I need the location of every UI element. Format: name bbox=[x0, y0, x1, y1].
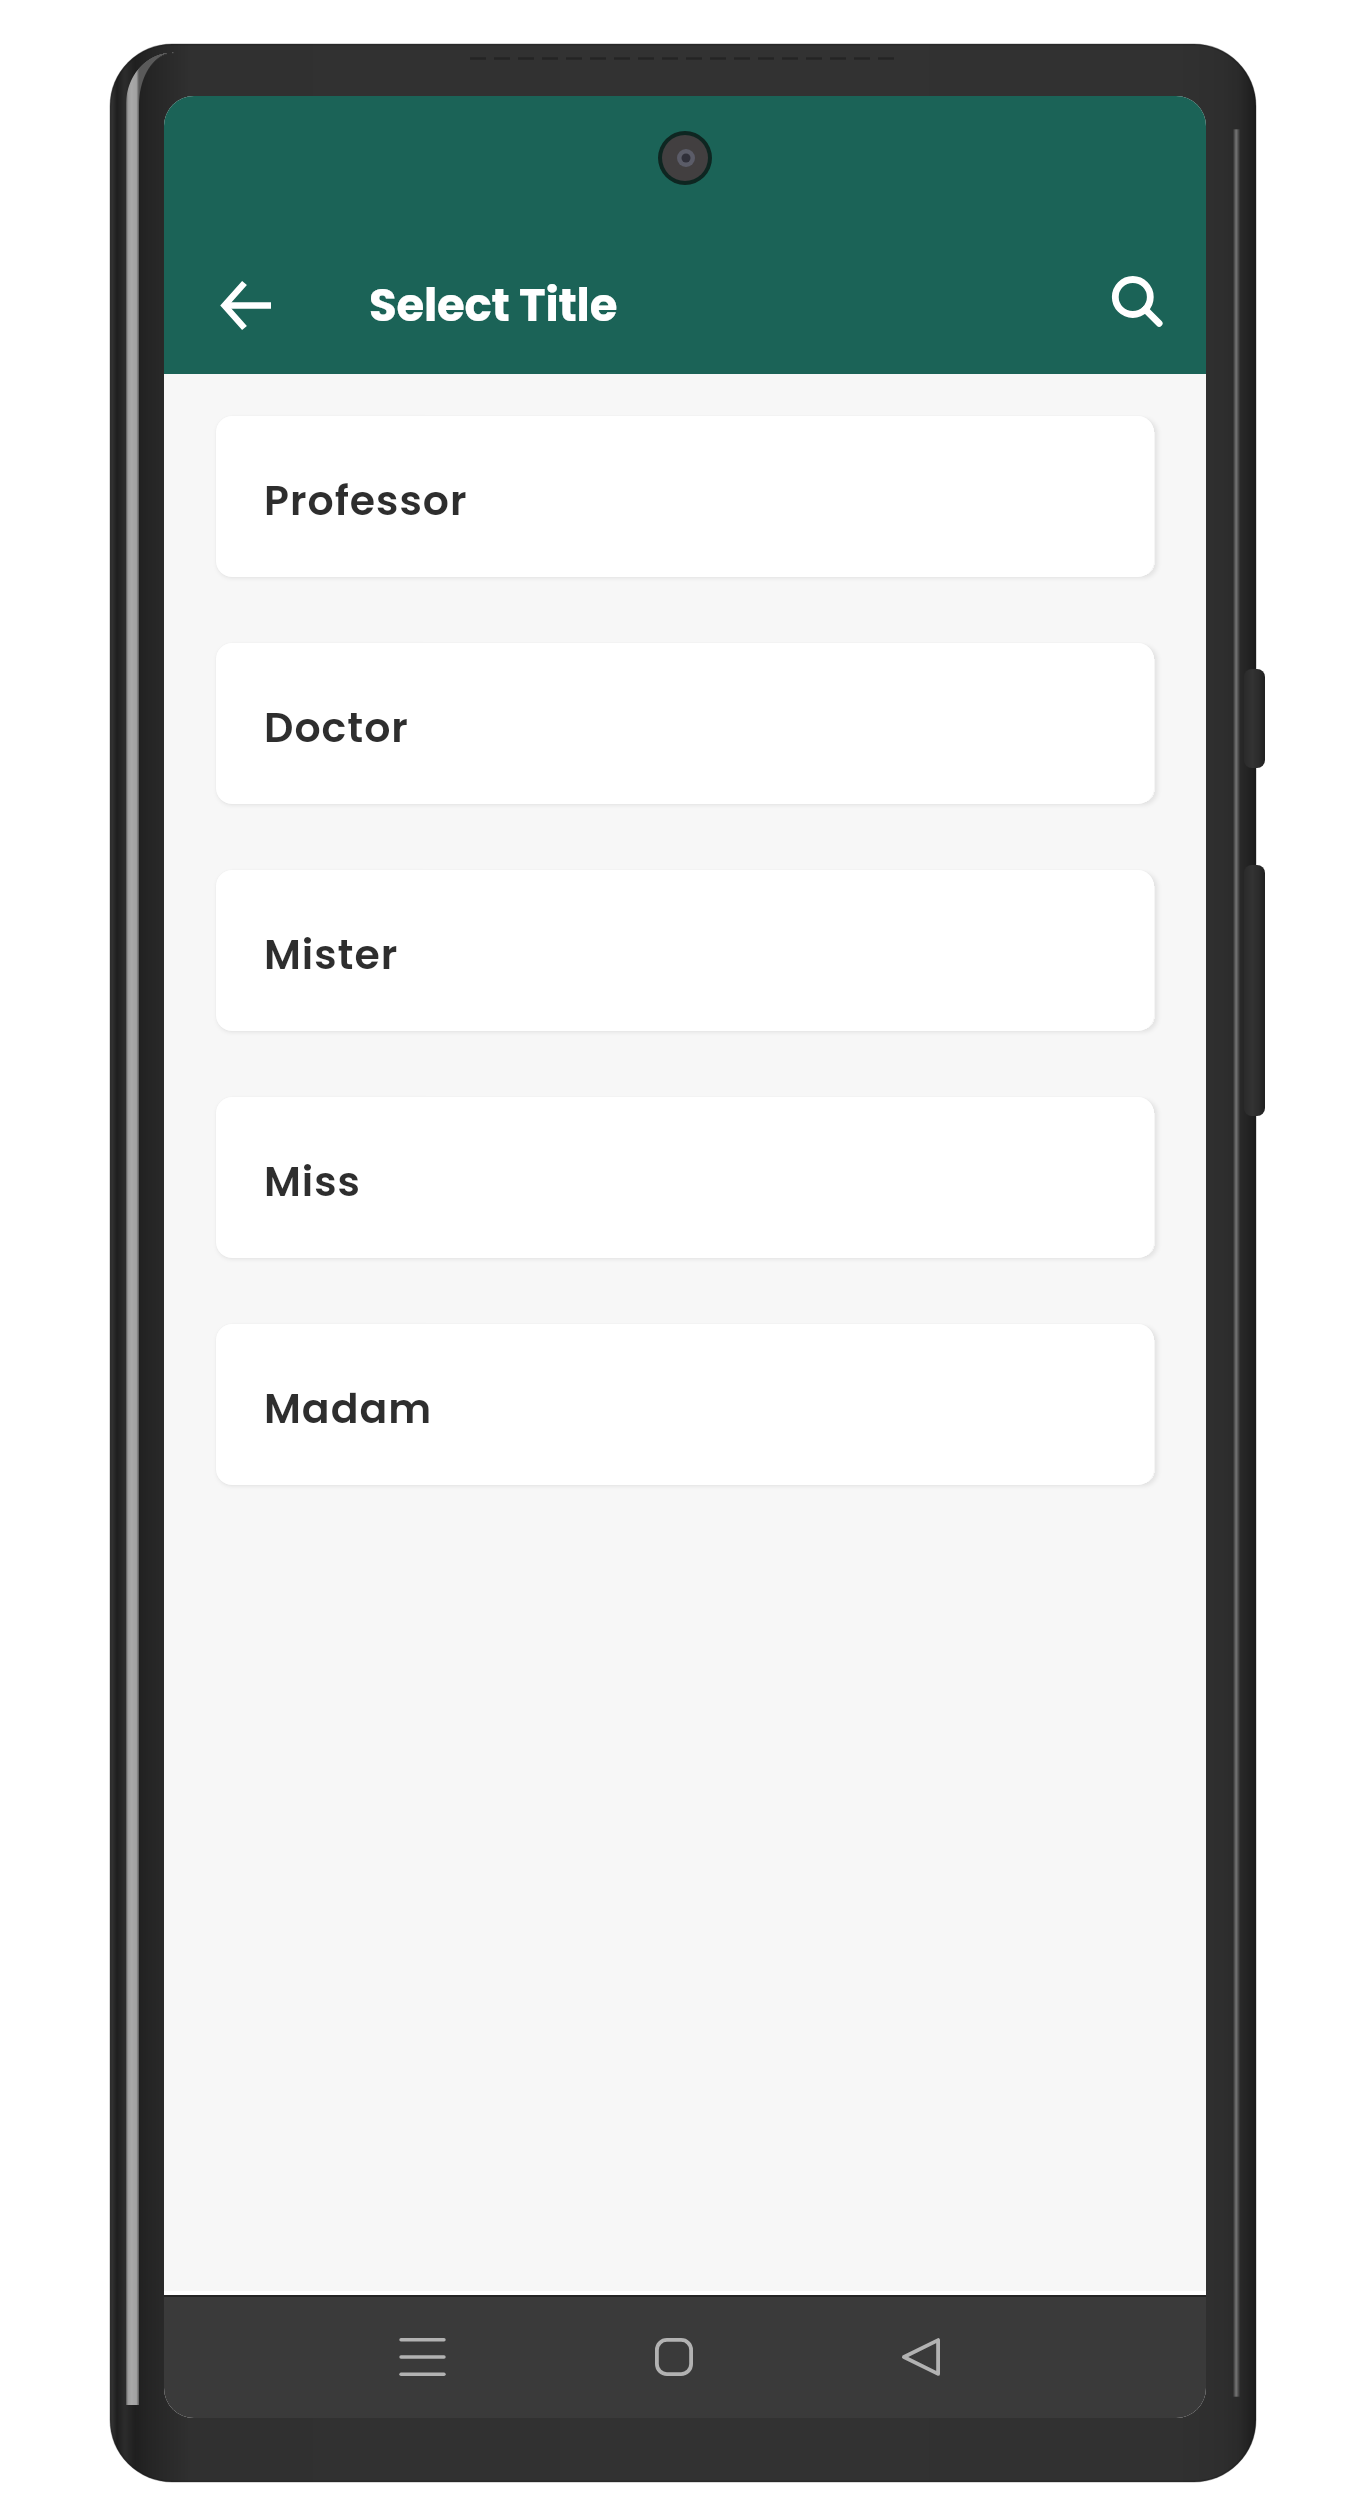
button[interactable]: Search bbox=[1096, 257, 1192, 353]
button[interactable]: Doctor bbox=[216, 643, 1154, 804]
button[interactable]: Back bbox=[198, 257, 294, 353]
staticText: Mister bbox=[264, 926, 399, 983]
button[interactable]: Mister bbox=[216, 870, 1154, 1031]
staticText: Doctor bbox=[264, 699, 409, 756]
staticText: Professor bbox=[264, 472, 468, 529]
staticText: Select Title bbox=[369, 274, 618, 337]
button[interactable]: Professor bbox=[216, 416, 1154, 577]
button[interactable]: Home bbox=[619, 2302, 729, 2412]
button[interactable]: Back bbox=[866, 2302, 976, 2412]
staticText: Madam bbox=[264, 1380, 433, 1437]
button[interactable]: Madam bbox=[216, 1324, 1154, 1485]
staticText: Miss bbox=[264, 1153, 361, 1210]
button[interactable]: Miss bbox=[216, 1097, 1154, 1258]
button[interactable]: Recents bbox=[367, 2302, 477, 2412]
